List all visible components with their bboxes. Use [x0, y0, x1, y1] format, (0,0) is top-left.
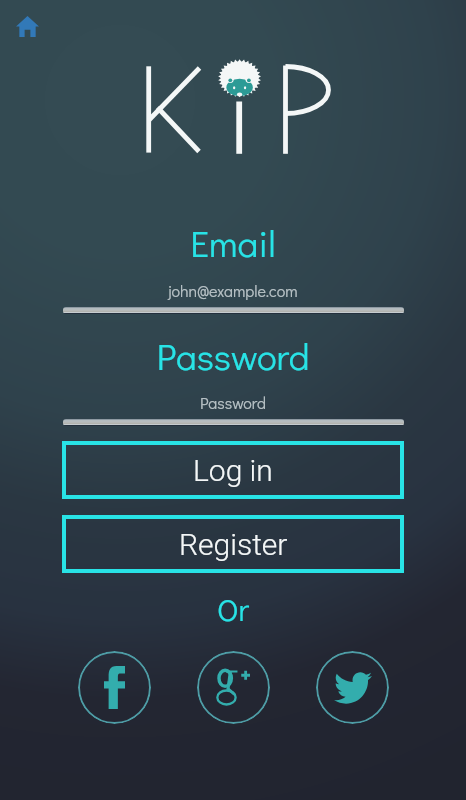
button[interactable]	[63, 419, 404, 426]
button[interactable]: Twitter	[316, 651, 389, 724]
staticText: Log in	[193, 453, 273, 488]
button[interactable]: Log in	[62, 441, 404, 499]
staticText: Register	[179, 527, 288, 562]
button[interactable]: Google Plus	[197, 651, 270, 724]
button[interactable]: Home	[5, 4, 50, 49]
staticText: john@example.com	[0, 280, 466, 301]
button[interactable]: Register	[62, 515, 404, 573]
button[interactable]: Facebook	[78, 651, 151, 724]
staticText: Email	[0, 218, 466, 267]
button[interactable]	[63, 307, 404, 314]
staticText: Password	[0, 331, 466, 380]
staticText: Password	[0, 392, 466, 413]
staticText: Or	[0, 589, 466, 630]
